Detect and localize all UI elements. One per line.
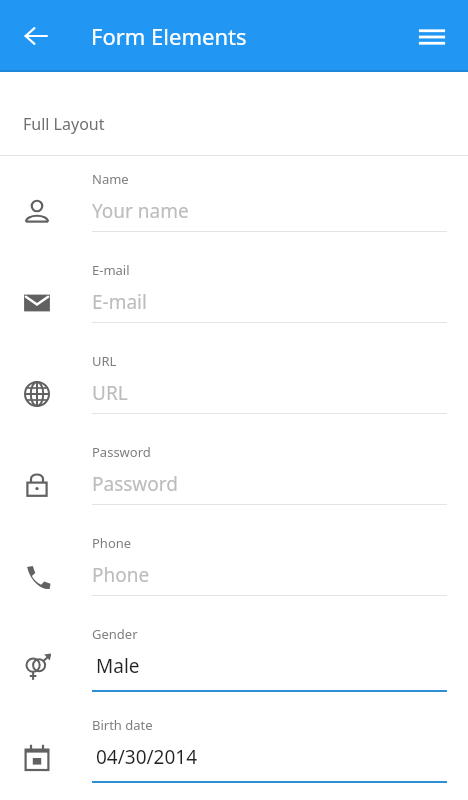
button[interactable]: E-mail bbox=[0, 256, 468, 347]
button[interactable]: Menu bbox=[408, 13, 456, 61]
staticText: Name bbox=[92, 170, 129, 188]
staticText: Birth date bbox=[92, 716, 153, 734]
staticText: Password bbox=[92, 443, 151, 461]
staticText: E-mail bbox=[92, 289, 147, 315]
staticText: Form Elements bbox=[91, 21, 247, 51]
button[interactable]: Password bbox=[0, 438, 468, 529]
staticText: Phone bbox=[92, 534, 132, 552]
staticText: 04/30/2014 bbox=[96, 744, 198, 770]
staticText: URL bbox=[92, 380, 128, 406]
button[interactable]: Back bbox=[12, 12, 60, 60]
staticText: E-mail bbox=[92, 261, 130, 279]
button[interactable]: Name bbox=[0, 165, 468, 256]
staticText: Password bbox=[92, 471, 178, 497]
button[interactable]: Gender bbox=[0, 620, 468, 711]
staticText: Gender bbox=[92, 625, 138, 643]
staticText: Your name bbox=[92, 198, 189, 224]
staticText: Full Layout bbox=[23, 113, 105, 135]
button[interactable]: Birth date bbox=[0, 711, 468, 800]
staticText: Male bbox=[96, 653, 140, 679]
staticText: URL bbox=[92, 352, 117, 370]
button[interactable]: Phone bbox=[0, 529, 468, 620]
staticText: Phone bbox=[92, 562, 150, 588]
button[interactable]: URL bbox=[0, 347, 468, 438]
